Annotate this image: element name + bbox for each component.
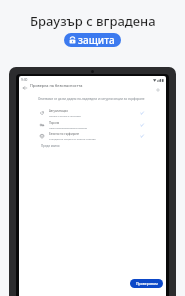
staticText: Безопасно сърфиране	[49, 132, 80, 136]
button[interactable]: Пароли	[19, 119, 166, 131]
staticText: Браузър с вградена	[30, 12, 156, 30]
staticText: Пароли	[49, 121, 60, 125]
button[interactable]: Назад	[21, 84, 29, 92]
staticText: Проверявам	[136, 281, 158, 286]
button[interactable]: Проверявам	[130, 279, 163, 288]
button[interactable]: Безопасно сърфиране	[19, 130, 166, 142]
staticText: 9:30	[21, 78, 28, 82]
button[interactable]: Още опции	[154, 86, 162, 94]
staticText: защита	[78, 33, 115, 47]
staticText: Google Chrome е актуален	[49, 114, 82, 117]
staticText: Опитваме се да ви дадем по-надеждни и си…	[38, 97, 145, 101]
button[interactable]: Актуализация	[19, 107, 166, 119]
staticText: Няма компрометирани пароли	[49, 126, 88, 129]
staticText: Актуализация	[49, 109, 68, 113]
staticText: Проверка на безопасността	[30, 83, 83, 88]
staticText: Стандартна защита от опасни сайтове	[49, 137, 96, 140]
staticText: Преди малко	[41, 144, 60, 148]
button[interactable]: защита	[64, 33, 121, 47]
